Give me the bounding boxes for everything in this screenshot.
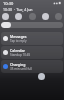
staticText: 10:30 — [3, 1, 14, 6]
staticText: Charging — [10, 62, 26, 67]
staticText: 35 min until full — [10, 67, 32, 71]
staticText: Messages — [10, 34, 27, 39]
staticText: Calendar — [10, 48, 26, 53]
button[interactable]: Settings — [38, 73, 45, 80]
button[interactable]: Calendar — [1, 46, 63, 59]
button[interactable]: Messages — [1, 32, 63, 45]
button[interactable]: Wi-Fi — [2, 13, 9, 20]
button[interactable]: Flashlight — [42, 13, 49, 20]
staticText: Tap to reply — [10, 39, 27, 43]
button[interactable]: Brightness — [1, 22, 63, 28]
staticText: Standup 10:45 — [10, 53, 31, 57]
button[interactable]: Auto-rotate — [55, 13, 62, 20]
staticText: 10:30 · Tue, 4 Jun — [3, 7, 33, 12]
button[interactable]: Do not disturb — [29, 13, 36, 20]
button[interactable]: Bluetooth — [15, 13, 22, 20]
button[interactable]: Charging — [1, 60, 63, 73]
